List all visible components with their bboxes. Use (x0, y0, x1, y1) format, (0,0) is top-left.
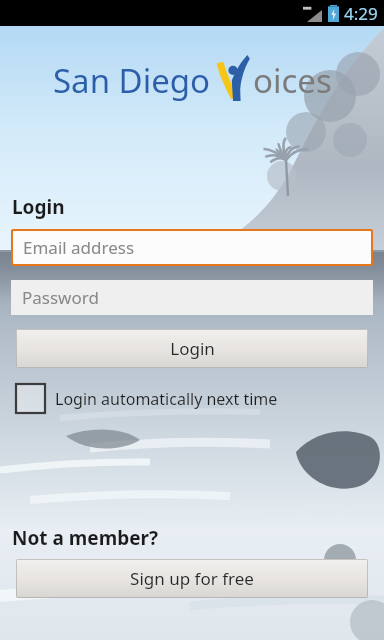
button[interactable]: Password (11, 280, 373, 315)
staticText: Login automatically next time (55, 388, 278, 410)
button[interactable]: Login automatically next time (16, 384, 278, 413)
staticText: Email address (23, 236, 135, 259)
button[interactable]: Sign up for free (16, 559, 368, 598)
staticText: San Diego (53, 58, 211, 103)
button[interactable]: Login (16, 329, 368, 368)
button[interactable]: Email address (13, 231, 371, 264)
staticText: Login (12, 194, 65, 220)
staticText: 4:29 (344, 2, 378, 25)
staticText: Password (22, 286, 99, 309)
staticText: Not a member? (12, 525, 159, 551)
staticText: Login (170, 337, 215, 360)
staticText: Sign up for free (130, 567, 254, 590)
staticText: oices (253, 58, 332, 103)
